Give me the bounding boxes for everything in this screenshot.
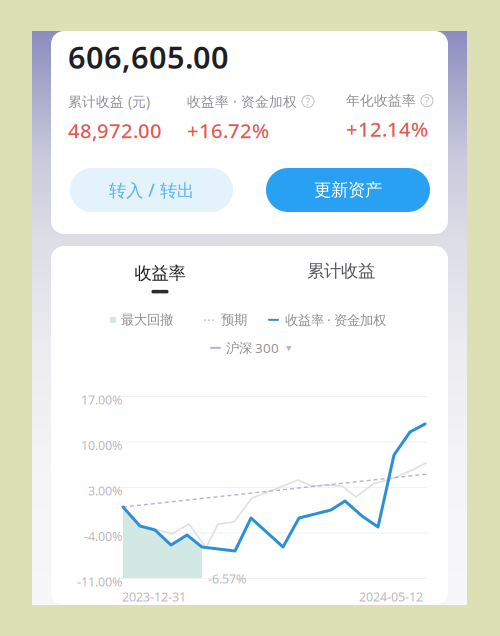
staticText: 预期 <box>221 312 247 328</box>
staticText: 最大回撤 <box>121 312 173 328</box>
staticText: -4.00% <box>84 527 122 545</box>
staticText: ? <box>305 94 310 108</box>
staticText: 更新资产 <box>314 179 382 201</box>
staticText: 收益率 · 资金加权 <box>285 311 386 329</box>
button[interactable]: 收益率 <box>100 258 220 298</box>
staticText: ? <box>424 94 429 108</box>
staticText: 2024-05-12 <box>359 588 423 605</box>
staticText: 606,605.00 <box>68 36 229 78</box>
staticText: 累计收益 (元) <box>68 92 150 111</box>
staticText: 48,972.00 <box>68 117 162 144</box>
staticText: -11.00% <box>77 573 122 590</box>
staticText: 收益率 · 资金加权 <box>187 92 297 111</box>
staticText: 收益率 <box>134 263 185 284</box>
staticText: +16.72% <box>187 117 269 144</box>
staticText: 累计收益 <box>307 260 375 282</box>
staticText: -6.57% <box>208 570 246 587</box>
staticText: 10.00% <box>81 436 122 454</box>
staticText: ··· <box>203 311 215 329</box>
staticText: 转入 / 转出 <box>109 178 194 201</box>
staticText: 沪深 300 <box>226 339 279 357</box>
staticText: 17.00% <box>81 391 122 408</box>
button[interactable]: 累计收益 <box>281 258 401 284</box>
staticText: 年化收益率 <box>346 92 416 109</box>
button[interactable]: 更新资产 <box>266 168 430 212</box>
staticText: 3.00% <box>88 482 122 499</box>
staticText: 2023-12-31 <box>122 588 186 605</box>
staticText: ▾ <box>286 342 291 354</box>
button[interactable]: 转入 / 转出 <box>70 168 233 212</box>
staticText: +12.14% <box>346 115 428 143</box>
